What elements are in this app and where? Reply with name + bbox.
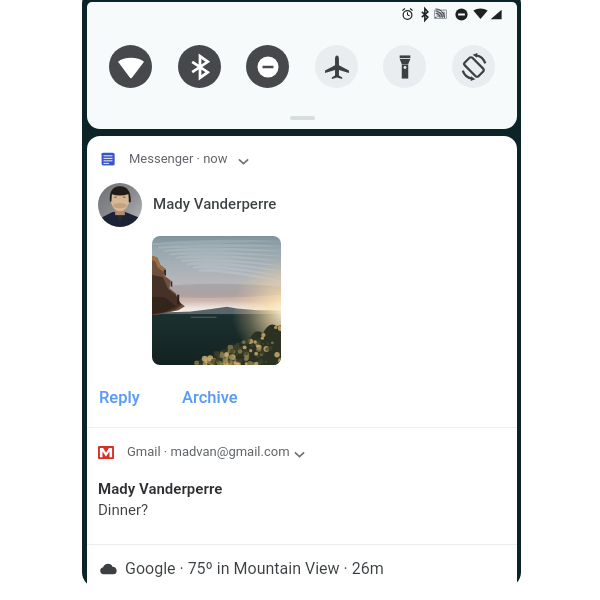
button[interactable]: Expand notification — [232, 150, 254, 172]
button[interactable]: Bluetooth — [178, 45, 221, 88]
staticText: Archive — [182, 388, 238, 407]
button[interactable]: Gmail · madvan@gmail.com — [87, 428, 517, 544]
button[interactable]: Google · 75º in Mountain View · 26m — [87, 545, 517, 596]
button[interactable]: Airplane mode — [315, 45, 358, 88]
staticText: Messenger · now — [129, 151, 228, 166]
button[interactable]: Expand notification — [288, 443, 310, 465]
staticText: Reply — [99, 388, 140, 407]
button[interactable]: Messenger · now — [87, 136, 517, 427]
staticText: Dinner? — [98, 501, 149, 519]
button[interactable]: Wi-Fi — [109, 45, 152, 88]
button[interactable]: Do not disturb — [246, 45, 289, 88]
button[interactable]: Archive — [173, 379, 247, 416]
button[interactable]: Auto rotate — [452, 45, 495, 88]
staticText: Mady Vanderperre — [153, 195, 277, 213]
staticText: Gmail · madvan@gmail.com — [127, 444, 290, 459]
staticText: Mady Vanderperre — [98, 480, 223, 498]
staticText: Google · 75º in Mountain View · 26m — [125, 559, 384, 578]
button[interactable]: Reply — [90, 379, 149, 416]
button[interactable]: Flashlight — [383, 45, 426, 88]
